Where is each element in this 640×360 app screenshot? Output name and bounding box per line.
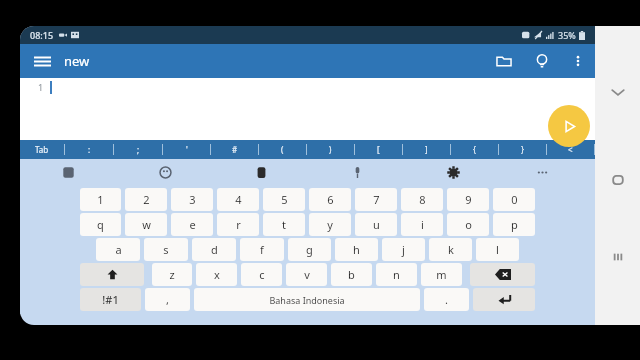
staticText: w bbox=[142, 217, 151, 232]
staticText: l bbox=[496, 242, 499, 257]
staticText: t bbox=[282, 217, 286, 232]
button[interactable]: x bbox=[196, 263, 237, 286]
button[interactable]: j bbox=[382, 238, 425, 261]
button[interactable]: ] bbox=[403, 140, 450, 159]
button[interactable]: { bbox=[451, 140, 498, 159]
button[interactable]: w bbox=[125, 213, 167, 236]
button[interactable]: 7 bbox=[355, 188, 397, 211]
button[interactable]: e bbox=[171, 213, 213, 236]
button[interactable]: 3 bbox=[171, 188, 213, 211]
staticText: b bbox=[348, 267, 355, 282]
staticText: 0 bbox=[511, 192, 518, 207]
staticText: ) bbox=[329, 144, 332, 155]
button[interactable]: Tips bbox=[523, 44, 561, 78]
staticText: } bbox=[521, 144, 525, 155]
button[interactable]: i bbox=[401, 213, 443, 236]
staticText: i bbox=[421, 217, 424, 232]
staticText: # bbox=[232, 144, 238, 155]
staticText: e bbox=[189, 217, 196, 232]
button[interactable]: Home bbox=[598, 160, 638, 200]
button[interactable]: c bbox=[241, 263, 282, 286]
button[interactable]: k bbox=[429, 238, 472, 261]
staticText: 1 bbox=[38, 81, 44, 93]
button[interactable]: 8 bbox=[401, 188, 443, 211]
button[interactable]: ) bbox=[307, 140, 354, 159]
button[interactable]: ' bbox=[163, 140, 210, 159]
button[interactable]: z bbox=[152, 263, 192, 286]
button[interactable]: 9 bbox=[447, 188, 489, 211]
button[interactable]: m bbox=[421, 263, 462, 286]
button[interactable]: a bbox=[96, 238, 140, 261]
button[interactable]: Voice input bbox=[309, 159, 405, 185]
button[interactable]: < bbox=[547, 140, 594, 159]
staticText: j bbox=[402, 242, 405, 257]
button[interactable]: Menu bbox=[20, 44, 64, 78]
staticText: o bbox=[465, 217, 472, 232]
staticText: Bahasa Indonesia bbox=[269, 294, 345, 306]
button[interactable]: p bbox=[493, 213, 535, 236]
button[interactable]: Hide keyboard bbox=[598, 72, 638, 112]
button[interactable]: Stickers bbox=[20, 159, 117, 185]
button[interactable]: More options bbox=[561, 44, 595, 78]
staticText: 7 bbox=[373, 192, 380, 207]
button[interactable]: u bbox=[355, 213, 397, 236]
button[interactable]: } bbox=[499, 140, 546, 159]
button[interactable]: v bbox=[286, 263, 327, 286]
staticText: 6 bbox=[327, 192, 334, 207]
button[interactable]: Emoji bbox=[117, 159, 213, 185]
staticText: y bbox=[327, 217, 333, 232]
staticText: q bbox=[97, 217, 104, 232]
button[interactable]: y bbox=[309, 213, 351, 236]
button[interactable]: [ bbox=[355, 140, 402, 159]
button[interactable]: d bbox=[192, 238, 236, 261]
button[interactable]: !#1 bbox=[80, 288, 141, 311]
staticText: u bbox=[373, 217, 380, 232]
button[interactable]: Tab bbox=[20, 140, 64, 159]
staticText: k bbox=[448, 242, 454, 257]
staticText: [ bbox=[377, 144, 380, 155]
button[interactable]: g bbox=[288, 238, 331, 261]
staticText: 4 bbox=[235, 192, 242, 207]
button[interactable]: q bbox=[80, 213, 121, 236]
staticText: v bbox=[304, 267, 310, 282]
button[interactable]: ( bbox=[259, 140, 306, 159]
button[interactable]: Bahasa Indonesia bbox=[194, 288, 420, 311]
button[interactable]: Clipboard bbox=[213, 159, 309, 185]
staticText: : bbox=[88, 144, 91, 155]
button[interactable]: 2 bbox=[125, 188, 167, 211]
staticText: 1 bbox=[97, 192, 104, 207]
button[interactable]: More bbox=[501, 159, 583, 185]
button[interactable]: Backspace bbox=[470, 263, 535, 286]
button[interactable]: o bbox=[447, 213, 489, 236]
button[interactable]: 0 bbox=[493, 188, 535, 211]
staticText: z bbox=[169, 267, 175, 282]
button[interactable]: . bbox=[424, 288, 469, 311]
button[interactable]: l bbox=[476, 238, 519, 261]
button[interactable]: : bbox=[65, 140, 113, 159]
button[interactable]: # bbox=[211, 140, 258, 159]
button[interactable]: b bbox=[331, 263, 372, 286]
button[interactable]: r bbox=[217, 213, 259, 236]
button[interactable]: 5 bbox=[263, 188, 305, 211]
button[interactable]: s bbox=[144, 238, 188, 261]
button[interactable]: Run bbox=[548, 105, 590, 147]
button[interactable]: ; bbox=[114, 140, 162, 159]
button[interactable]: 4 bbox=[217, 188, 259, 211]
button[interactable]: Enter bbox=[473, 288, 535, 311]
button[interactable]: Shift bbox=[80, 263, 144, 286]
button[interactable]: t bbox=[263, 213, 305, 236]
button[interactable]: h bbox=[335, 238, 378, 261]
staticText: ' bbox=[186, 144, 188, 155]
button[interactable]: 1 bbox=[80, 188, 121, 211]
button[interactable]: n bbox=[376, 263, 417, 286]
button[interactable]: Open folder bbox=[485, 44, 523, 78]
button[interactable]: , bbox=[145, 288, 190, 311]
staticText: { bbox=[473, 144, 477, 155]
staticText: 35% bbox=[558, 29, 576, 41]
button[interactable]: Recent apps bbox=[598, 237, 638, 277]
button[interactable]: f bbox=[240, 238, 284, 261]
staticText: 8 bbox=[419, 192, 426, 207]
staticText: 08:15 bbox=[30, 29, 54, 41]
button[interactable]: 6 bbox=[309, 188, 351, 211]
button[interactable]: Keyboard settings bbox=[405, 159, 501, 185]
